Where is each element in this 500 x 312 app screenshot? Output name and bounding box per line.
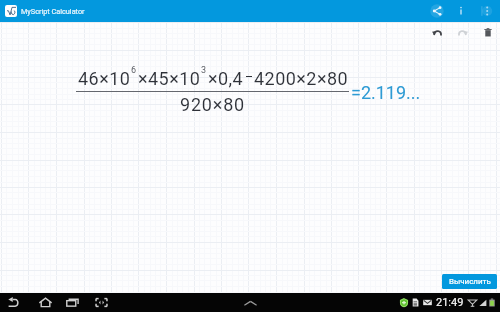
button[interactable]: More options: [476, 1, 496, 21]
staticText: 46×10: [78, 68, 131, 89]
staticText: ×0,4: [208, 68, 244, 89]
staticText: 6: [131, 65, 137, 76]
button[interactable]: Home: [37, 294, 54, 311]
staticText: Вычислить: [449, 277, 491, 286]
button[interactable]: Screenshot: [93, 294, 110, 311]
button[interactable]: Recent apps: [64, 294, 81, 311]
staticText: ×45×10: [138, 68, 201, 89]
button[interactable]: Share: [427, 1, 447, 21]
staticText: =2.119...: [351, 82, 421, 103]
button[interactable]: Back: [4, 294, 21, 311]
button[interactable]: Delete: [479, 23, 497, 41]
button[interactable]: Redo: [454, 23, 472, 41]
button[interactable]: Show notifications: [242, 294, 259, 311]
button[interactable]: Undo: [428, 23, 446, 41]
staticText: 920×80: [76, 94, 349, 115]
staticText: 21:49: [436, 296, 464, 309]
button[interactable]: Вычислить: [442, 274, 497, 289]
staticText: MyScript Calculator: [21, 7, 85, 16]
staticText: 3: [201, 65, 207, 76]
button[interactable]: Info: [451, 1, 471, 21]
staticText: 4200×2×80: [254, 68, 349, 89]
